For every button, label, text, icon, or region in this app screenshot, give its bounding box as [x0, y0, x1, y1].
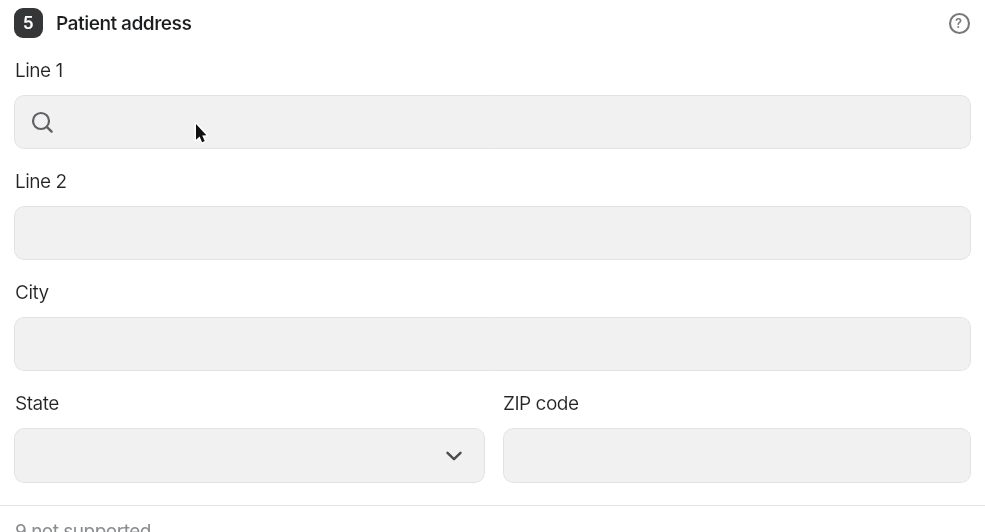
staticText: ? — [955, 15, 963, 31]
button[interactable] — [14, 95, 971, 149]
staticText: State — [15, 392, 59, 415]
staticText: City — [15, 281, 49, 304]
staticText: ZIP code — [503, 392, 579, 415]
button[interactable] — [14, 428, 485, 483]
staticText: Line 1 — [15, 59, 63, 82]
staticText: Line 2 — [15, 170, 67, 193]
staticText: Patient address — [56, 12, 192, 35]
button[interactable]: ? — [944, 8, 974, 38]
button[interactable]: 5 — [14, 8, 43, 38]
staticText: 5 — [23, 13, 34, 34]
staticText: 9 not supported — [15, 520, 151, 532]
